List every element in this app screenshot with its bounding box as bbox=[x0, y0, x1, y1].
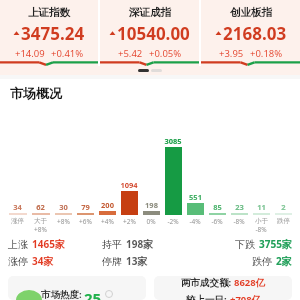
button[interactable]: 深证成指 bbox=[100, 0, 199, 66]
staticText: 涨停 bbox=[8, 255, 28, 268]
staticText: 2家 bbox=[276, 254, 292, 268]
staticText: +8% bbox=[34, 225, 47, 234]
staticText: 大于 bbox=[34, 217, 47, 225]
staticText: 2168.03 bbox=[223, 22, 287, 45]
staticText: 停牌 bbox=[102, 255, 122, 268]
staticText: 79 bbox=[81, 202, 90, 212]
staticText: +8% bbox=[57, 217, 70, 226]
button[interactable]: 上证指数 bbox=[0, 0, 98, 66]
button[interactable]: 跌停 bbox=[197, 254, 292, 268]
staticText: 3085 bbox=[164, 136, 182, 146]
staticText: +14.09 bbox=[15, 47, 45, 60]
button[interactable]: 持平 bbox=[102, 237, 197, 251]
staticText: 62 bbox=[36, 202, 45, 212]
staticText: 较上一日: bbox=[186, 293, 230, 300]
staticText: -2% bbox=[167, 217, 179, 226]
staticText: 25 bbox=[84, 288, 102, 300]
staticText: 34家 bbox=[32, 254, 54, 268]
staticText: 8628亿 bbox=[234, 276, 266, 289]
staticText: 1465家 bbox=[32, 237, 65, 251]
staticText: 30 bbox=[59, 202, 68, 212]
staticText: 0% bbox=[146, 217, 156, 226]
staticText: 两市成交额: bbox=[181, 276, 234, 289]
staticText: 下跌 bbox=[235, 238, 255, 251]
staticText: 上涨 bbox=[8, 238, 28, 251]
staticText: 3475.24 bbox=[21, 22, 85, 45]
staticText: 跌停 bbox=[252, 255, 272, 268]
staticText: 小于 bbox=[255, 217, 268, 225]
staticText: 34 bbox=[13, 202, 22, 212]
staticText: 创业板指 bbox=[230, 6, 272, 19]
staticText: 深证成指 bbox=[129, 6, 171, 19]
staticText: 198 bbox=[145, 200, 158, 210]
staticText: 3755家 bbox=[259, 237, 292, 251]
staticText: +0.41% bbox=[51, 47, 84, 60]
staticText: +2% bbox=[123, 217, 136, 226]
staticText: -8% bbox=[255, 225, 267, 234]
staticText: 持平 bbox=[102, 238, 122, 251]
staticText: +708亿 bbox=[230, 293, 262, 300]
staticText: 13家 bbox=[126, 254, 148, 268]
staticText: 涨停 bbox=[11, 217, 24, 225]
staticText: 11 bbox=[257, 202, 266, 212]
staticText: 2 bbox=[281, 202, 286, 212]
staticText: 23 bbox=[235, 202, 244, 212]
staticText: +0.05% bbox=[149, 47, 182, 60]
staticText: +6% bbox=[79, 217, 92, 226]
staticText: 市场概况 bbox=[10, 85, 62, 101]
staticText: +0.18% bbox=[250, 47, 283, 60]
button[interactable]: 涨停 bbox=[8, 254, 102, 268]
staticText: -8% bbox=[233, 217, 245, 226]
staticText: -6% bbox=[211, 217, 223, 226]
staticText: 上证指数 bbox=[28, 6, 70, 19]
staticText: 10540.00 bbox=[117, 22, 190, 45]
staticText: +5.42 bbox=[118, 47, 143, 60]
staticText: -4% bbox=[189, 217, 201, 226]
button[interactable]: 停牌 bbox=[102, 254, 197, 268]
staticText: +3.95 bbox=[219, 47, 244, 60]
staticText: 198家 bbox=[126, 237, 154, 251]
staticText: 市场热度: bbox=[41, 288, 82, 300]
staticText: 1094 bbox=[120, 180, 138, 190]
button[interactable]: 上涨 bbox=[8, 237, 102, 251]
staticText: 跌停 bbox=[277, 217, 290, 225]
staticText: 200 bbox=[101, 200, 114, 210]
staticText: +4% bbox=[101, 217, 114, 226]
button[interactable]: 市场热度: bbox=[8, 276, 146, 300]
staticText: 85 bbox=[213, 202, 222, 212]
button[interactable]: 两市成交额: bbox=[154, 276, 292, 300]
button[interactable]: 下跌 bbox=[197, 237, 292, 251]
button[interactable]: 创业板指 bbox=[201, 0, 300, 66]
staticText: 551 bbox=[189, 192, 202, 202]
